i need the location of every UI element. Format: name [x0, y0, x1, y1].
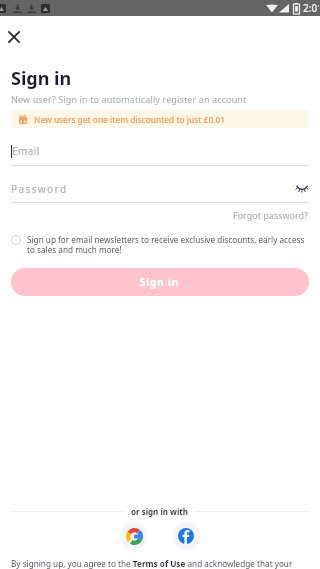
staticText: Sign in	[140, 275, 180, 289]
button[interactable]: Show password	[292, 182, 312, 194]
staticText: or sign in with	[131, 506, 188, 517]
button[interactable]: Sign up for email newsletters to receive…	[11, 234, 308, 256]
button[interactable]: Forgot password?	[233, 209, 309, 221]
button[interactable]: Sign in	[11, 268, 309, 296]
button[interactable]: Close	[0, 23, 27, 50]
button[interactable]: Sign in with Google	[120, 522, 148, 550]
staticText: Sign in	[11, 66, 72, 91]
staticText: By signing up, you agree to the Terms of…	[11, 558, 293, 569]
staticText: Email	[12, 144, 40, 158]
staticText: Forgot password?	[233, 209, 309, 221]
button[interactable]: Sign in with Facebook	[172, 522, 200, 550]
staticText: New user? Sign in to automatically regis…	[11, 93, 247, 105]
button[interactable]: Email	[11, 139, 309, 163]
staticText: Sign up for email newsletters to receive…	[27, 234, 308, 256]
staticText: New users get one item discounted to jus…	[34, 114, 225, 125]
staticText: 2:01	[303, 1, 319, 15]
button[interactable]: Password	[11, 178, 271, 200]
staticText: Password	[11, 182, 68, 196]
